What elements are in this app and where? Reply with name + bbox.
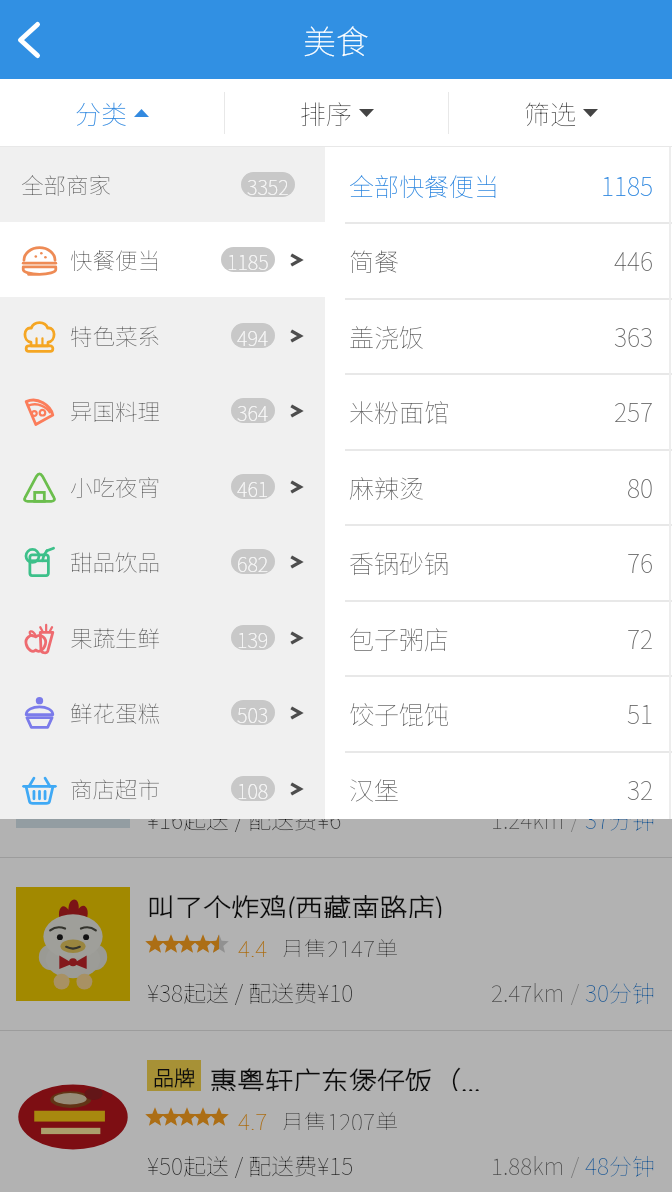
staticText: 甜品饮品 (70, 545, 161, 578)
button[interactable]: 果蔬生鲜 (0, 600, 325, 675)
staticText: 饺子馄饨 (349, 695, 450, 731)
staticText: 364 (237, 398, 269, 423)
staticText: 37分钟 (585, 802, 655, 832)
staticText: 446 (614, 242, 654, 278)
staticText: 76 (627, 544, 654, 580)
staticText: 叫了个炸鸡(西藏南路店) (147, 887, 444, 918)
button[interactable]: 米粉面馆 (325, 373, 672, 448)
staticText: 麻辣烫 (349, 469, 425, 505)
button[interactable]: 品牌 (0, 1031, 672, 1192)
button[interactable]: 甜品饮品 (0, 524, 325, 599)
staticText: 香锅砂锅 (349, 544, 450, 580)
button[interactable]: 筛选 (449, 79, 672, 147)
button[interactable]: 全部商家 (0, 147, 325, 222)
staticText: 4.2 (238, 758, 268, 784)
staticText: 682 (237, 549, 269, 574)
button[interactable]: 麻辣烫 (325, 449, 672, 524)
staticText: 品牌 (153, 1062, 195, 1089)
staticText: 美食 (303, 16, 369, 64)
button[interactable]: 香锅砂锅 (325, 524, 672, 599)
staticText: 257 (614, 393, 654, 429)
staticText: 分类 (75, 94, 128, 132)
staticText: 139 (237, 625, 269, 650)
staticText: 363 (614, 318, 654, 354)
staticText: 108 (237, 776, 269, 801)
button[interactable]: 饺子馄饨 (325, 675, 672, 750)
staticText: 果蔬生鲜 (70, 621, 161, 654)
button[interactable]: 全部快餐便当 (325, 147, 672, 222)
staticText: 1.88km (491, 1148, 565, 1178)
button[interactable]: 鲜花蛋糕 (0, 675, 325, 750)
staticText: 4.7 (238, 1104, 268, 1130)
staticText: 51 (627, 695, 654, 731)
button[interactable]: 汉堡 (325, 751, 672, 819)
staticText: 30分钟 (585, 975, 655, 1005)
staticText: 筛选 (524, 94, 577, 132)
staticText: 简餐 (349, 242, 400, 278)
staticText: 快餐便当 (70, 243, 161, 276)
button[interactable]: 上海小吃(打浦桥店) (0, 148, 672, 857)
button[interactable]: 包子粥店 (325, 600, 672, 675)
button[interactable]: 叫了个炸鸡(西藏南路店) (0, 858, 672, 1030)
staticText: / (565, 975, 585, 1005)
staticText: 494 (237, 323, 269, 348)
button[interactable]: 异国料理 (0, 373, 325, 448)
staticText: 1185 (601, 167, 654, 203)
staticText: 3352 (247, 172, 289, 197)
staticText: 异国料理 (70, 394, 161, 427)
staticText: 1185 (227, 247, 269, 272)
staticText: 鲜花蛋糕 (70, 696, 161, 729)
button[interactable]: 商店超市 (0, 751, 325, 819)
staticText: 1.24km (491, 802, 565, 832)
staticText: 32 (627, 771, 654, 807)
staticText: 2.47km (491, 975, 565, 1005)
staticText: 小吃夜宵 (70, 470, 161, 503)
staticText: 4.4 (238, 931, 268, 957)
staticText: 月售1207单 (281, 1104, 398, 1130)
staticText: 月售2147单 (281, 931, 398, 957)
staticText: ¥50起送 / 配送费¥15 (147, 1148, 354, 1178)
staticText: 月售889单 (281, 758, 386, 784)
staticText: 80 (627, 469, 654, 505)
button[interactable]: 盖浇饭 (325, 298, 672, 373)
button[interactable]: 小吃夜宵 (0, 449, 325, 524)
staticText: 包子粥店 (349, 620, 450, 656)
staticText: 503 (237, 700, 269, 725)
staticText: / (565, 1148, 585, 1178)
button[interactable]: 特色菜系 (0, 298, 325, 373)
staticText: ¥38起送 / 配送费¥10 (147, 975, 354, 1005)
button[interactable]: 简餐 (325, 222, 672, 297)
staticText: 惠粤轩广东煲仔饭（... (209, 1060, 481, 1091)
staticText: ¥16起送 / 配送费¥6 (147, 802, 342, 832)
button[interactable]: Back (0, 0, 58, 79)
staticText: 米粉面馆 (349, 393, 450, 429)
button[interactable]: 排序 (225, 79, 448, 147)
button[interactable]: 分类 (0, 79, 224, 147)
staticText: 盖浇饭 (349, 318, 425, 354)
staticText: 上海小吃(打浦桥店) (147, 714, 388, 745)
staticText: 汉堡 (349, 771, 400, 807)
staticText: 全部快餐便当 (349, 167, 500, 203)
staticText: / (565, 802, 585, 832)
staticText: 商店超市 (70, 772, 161, 805)
staticText: 特色菜系 (70, 319, 161, 352)
staticText: 72 (627, 620, 654, 656)
staticText: 461 (237, 474, 269, 499)
staticText: 48分钟 (585, 1148, 655, 1178)
staticText: 排序 (300, 94, 353, 132)
staticText: 全部商家 (21, 168, 112, 201)
button[interactable]: 快餐便当 (0, 222, 325, 297)
